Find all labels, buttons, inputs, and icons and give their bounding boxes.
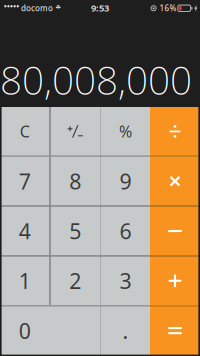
button[interactable]: Equals [150, 306, 200, 355]
button[interactable]: 2 [50, 256, 100, 305]
button[interactable]: 3 [101, 256, 150, 305]
button[interactable]: Clear [0, 107, 49, 156]
button[interactable]: 4 [0, 207, 49, 255]
staticText: 5 [69, 217, 81, 245]
button[interactable]: Subtract [150, 207, 200, 255]
button[interactable]: Decimal point [101, 306, 150, 355]
staticText: 0 [19, 316, 31, 345]
staticText: . [122, 316, 128, 345]
button[interactable]: Zero [0, 306, 100, 355]
staticText: % [119, 121, 132, 142]
staticText: 4 [19, 217, 31, 245]
staticText: 9 [119, 167, 131, 195]
button[interactable]: 8 [50, 157, 100, 206]
button[interactable]: Percent [101, 107, 150, 156]
button[interactable]: 1 [0, 256, 49, 305]
staticText: 16% [160, 3, 177, 13]
staticText: 7 [19, 167, 31, 195]
staticText: 1 [19, 267, 31, 295]
button[interactable]: Plus minus [50, 107, 100, 156]
button[interactable]: Add [150, 256, 200, 305]
staticText: 2 [69, 267, 81, 295]
staticText: 9:53 [91, 2, 109, 14]
button[interactable]: Divide [150, 107, 200, 156]
button[interactable]: 6 [101, 207, 150, 255]
button[interactable]: 7 [0, 157, 49, 206]
staticText: 6 [119, 217, 131, 245]
button[interactable]: 9 [101, 157, 150, 206]
button[interactable]: Multiply [150, 157, 200, 206]
staticText: 3 [119, 267, 131, 295]
staticText: 80,008,000 [0, 54, 192, 105]
button[interactable]: 5 [50, 207, 100, 255]
staticText: C [20, 121, 30, 142]
staticText: 8 [69, 167, 81, 195]
staticText: docomo [21, 3, 53, 13]
